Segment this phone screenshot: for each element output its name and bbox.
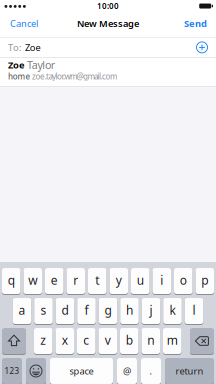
staticText: zoe.taylor.wm@gmail.com (32, 71, 117, 82)
button[interactable]: r (66, 268, 85, 294)
staticText: return (175, 365, 203, 377)
button[interactable]: Add Contact (196, 42, 207, 53)
button[interactable]: space (50, 358, 113, 384)
staticText: t (95, 272, 99, 288)
staticText: b (126, 332, 133, 348)
staticText: q (8, 272, 15, 288)
button[interactable]: Cancel (10, 17, 38, 29)
button[interactable]: t (88, 268, 106, 294)
button[interactable]: s (34, 298, 53, 324)
button[interactable]: @ (117, 358, 137, 384)
button[interactable]: To: Zoe (0, 38, 216, 57)
staticText: o (180, 272, 187, 288)
staticText: w (28, 272, 37, 288)
staticText: n (147, 332, 154, 348)
button[interactable]: i (152, 268, 171, 294)
button[interactable]: n (141, 328, 160, 354)
staticText: u (137, 272, 144, 288)
staticText: f (84, 302, 88, 318)
staticText: c (83, 332, 89, 348)
button[interactable]: y (109, 268, 128, 294)
staticText: z (40, 332, 46, 348)
button[interactable]: q (2, 268, 20, 294)
button[interactable]: z (34, 328, 52, 354)
staticText: . (149, 365, 152, 377)
staticText: Taylor (27, 58, 55, 72)
staticText: Send (184, 17, 207, 29)
button[interactable]: Zoe Taylor, home, zoe.taylor.wm@gmail.co… (0, 58, 216, 86)
button[interactable]: u (131, 268, 149, 294)
staticText: g (104, 302, 111, 318)
button[interactable]: d (56, 298, 74, 324)
button[interactable]: Delete (190, 328, 214, 354)
button[interactable]: o (174, 268, 192, 294)
staticText: x (62, 332, 68, 348)
staticText: New Message (77, 17, 139, 29)
button[interactable]: Send (184, 17, 207, 29)
staticText: To: (8, 41, 22, 54)
staticText: l (192, 302, 195, 318)
staticText: s (40, 302, 46, 318)
staticText: space (69, 365, 93, 377)
button[interactable]: 123 (2, 358, 22, 384)
staticText: 123 (4, 366, 19, 376)
staticText: 10:00 (97, 1, 119, 11)
button[interactable]: Emoji (26, 358, 46, 384)
staticText: p (201, 272, 208, 288)
button[interactable]: p (195, 268, 214, 294)
button[interactable]: f (77, 298, 96, 324)
button[interactable]: c (77, 328, 95, 354)
staticText: j (149, 302, 152, 318)
staticText: Zoe (8, 59, 27, 71)
staticText: @ (123, 365, 131, 377)
staticText: a (18, 302, 25, 318)
button[interactable]: l (185, 298, 203, 324)
staticText: Cancel (10, 17, 38, 29)
button[interactable]: m (163, 328, 181, 354)
staticText: v (105, 332, 111, 348)
button[interactable]: x (55, 328, 74, 354)
button[interactable]: Shift (2, 328, 26, 354)
button[interactable]: e (45, 268, 63, 294)
button[interactable]: h (120, 298, 139, 324)
button[interactable]: g (99, 298, 117, 324)
button[interactable]: w (23, 268, 42, 294)
staticText: home (8, 71, 30, 82)
button[interactable]: a (13, 298, 31, 324)
staticText: Zoe (25, 41, 41, 54)
button[interactable]: j (142, 298, 160, 324)
staticText: y (116, 272, 122, 288)
button[interactable]: . (141, 358, 161, 384)
button[interactable]: v (98, 328, 117, 354)
staticText: h (126, 302, 133, 318)
button[interactable]: return (165, 358, 214, 384)
staticText: i (160, 272, 163, 288)
staticText: k (169, 302, 175, 318)
staticText: d (61, 302, 68, 318)
staticText: r (73, 272, 78, 288)
staticText: m (167, 332, 178, 348)
button[interactable]: b (120, 328, 138, 354)
staticText: e (51, 272, 58, 288)
button[interactable]: k (163, 298, 182, 324)
